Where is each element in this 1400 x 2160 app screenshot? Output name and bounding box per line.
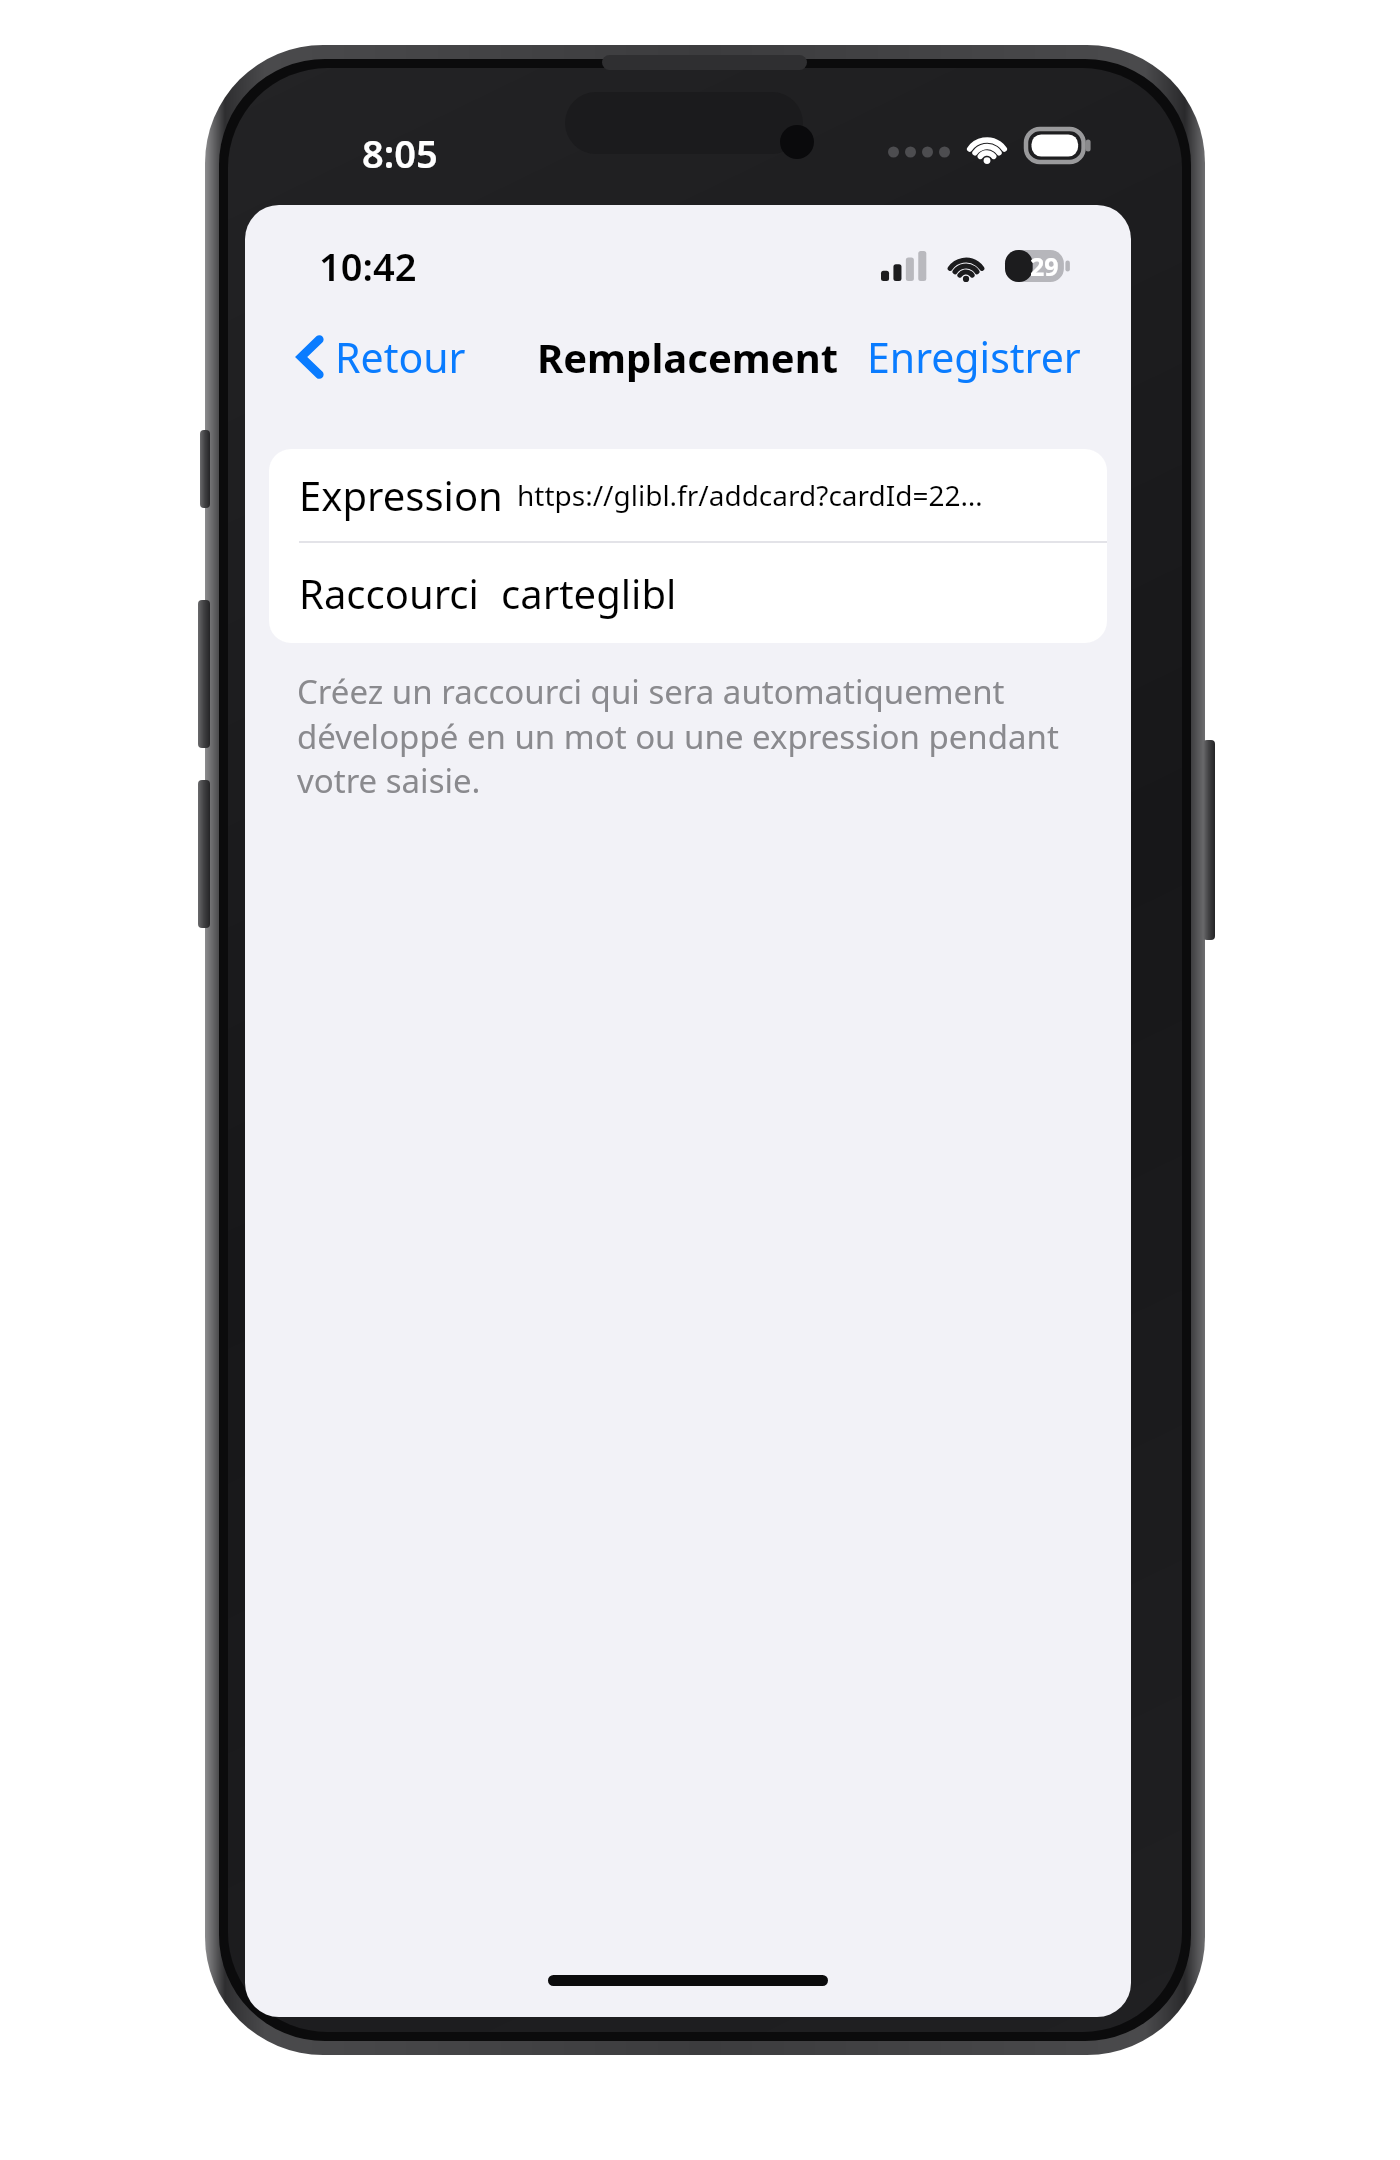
staticText: 29 — [1030, 249, 1059, 283]
staticText: Expression — [299, 468, 503, 522]
staticText: carteglibl — [501, 566, 677, 620]
button[interactable]: Enregistrer — [855, 321, 1131, 393]
staticText: Raccourci — [299, 566, 479, 620]
staticText: 8:05 — [362, 127, 438, 179]
staticText: Enregistrer — [867, 329, 1081, 385]
staticText: 10:42 — [319, 240, 417, 292]
staticText: Remplacement — [537, 330, 839, 384]
staticText: Retour — [335, 329, 466, 385]
other: Battery — [1026, 129, 1090, 162]
button[interactable]: Retour — [245, 321, 478, 393]
button[interactable]: Raccourci — [269, 543, 1107, 643]
staticText: https://glibl.fr/addcard?cardId=22… — [517, 476, 983, 514]
other: Wi-Fi — [963, 128, 1011, 164]
button[interactable]: Expression — [269, 449, 1107, 541]
staticText: Créez un raccourci qui sera automatiquem… — [297, 669, 1061, 802]
